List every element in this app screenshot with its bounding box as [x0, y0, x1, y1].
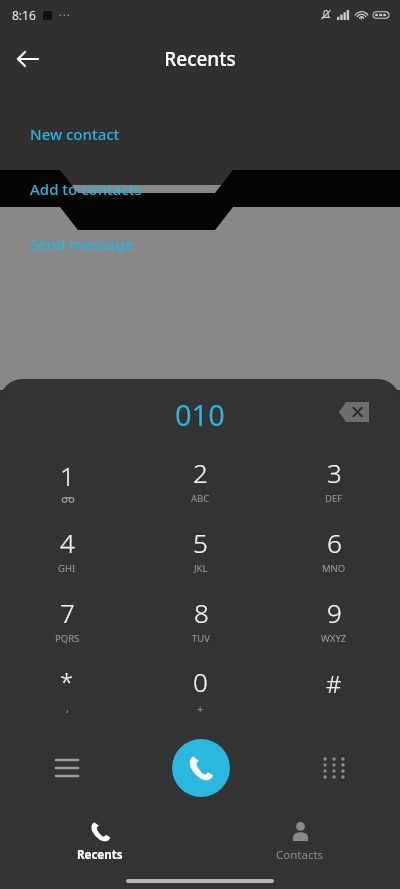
- staticText: PQRS: [55, 632, 80, 645]
- button[interactable]: 7: [0, 585, 134, 655]
- button[interactable]: Dialpad: [267, 733, 400, 803]
- staticText: DEF: [325, 492, 343, 505]
- staticText: 4: [60, 525, 75, 560]
- staticText: Recents: [77, 847, 123, 863]
- button[interactable]: Add to contacts: [0, 172, 400, 206]
- button[interactable]: 1: [0, 445, 134, 515]
- staticText: 6: [327, 525, 342, 560]
- staticText: 8: [194, 595, 209, 630]
- button[interactable]: Menu: [0, 733, 134, 803]
- staticText: Add to contacts: [30, 179, 142, 199]
- staticText: 8:16: [12, 7, 36, 23]
- button[interactable]: 2: [134, 445, 267, 515]
- button[interactable]: Call: [134, 725, 267, 811]
- staticText: WXYZ: [321, 632, 347, 645]
- button[interactable]: 5: [134, 515, 267, 585]
- staticText: 9: [327, 595, 342, 630]
- button[interactable]: Backspace: [334, 392, 374, 432]
- button[interactable]: Recents: [0, 811, 200, 873]
- staticText: GHI: [58, 562, 76, 575]
- staticText: ⋯: [58, 8, 70, 22]
- button[interactable]: Contacts: [200, 811, 400, 873]
- staticText: Send message: [30, 234, 134, 254]
- staticText: 5: [193, 525, 208, 560]
- button[interactable]: 8: [134, 585, 267, 655]
- staticText: #: [326, 667, 342, 700]
- button[interactable]: Send message: [0, 227, 400, 261]
- button[interactable]: 6: [267, 515, 400, 585]
- button[interactable]: 9: [267, 585, 400, 655]
- staticText: Recents: [28, 46, 372, 72]
- staticText: 010: [175, 395, 225, 434]
- staticText: 7: [60, 595, 75, 630]
- staticText: TUV: [192, 632, 210, 645]
- staticText: New contact: [30, 124, 120, 144]
- staticText: ,: [66, 700, 69, 715]
- button[interactable]: #: [267, 655, 400, 725]
- staticText: *: [60, 665, 74, 698]
- staticText: 3: [327, 455, 342, 490]
- button[interactable]: Back: [0, 31, 56, 87]
- staticText: 0: [193, 664, 208, 699]
- staticText: JKL: [194, 562, 208, 575]
- staticText: 1: [60, 458, 75, 493]
- staticText: MNO: [322, 562, 346, 575]
- staticText: Contacts: [276, 847, 324, 863]
- button[interactable]: 0: [134, 655, 267, 725]
- button[interactable]: 3: [267, 445, 400, 515]
- staticText: +: [197, 701, 204, 716]
- button[interactable]: 4: [0, 515, 134, 585]
- button[interactable]: *: [0, 655, 134, 725]
- staticText: 2: [193, 455, 208, 490]
- staticText: ABC: [191, 492, 210, 505]
- button[interactable]: New contact: [0, 117, 400, 151]
